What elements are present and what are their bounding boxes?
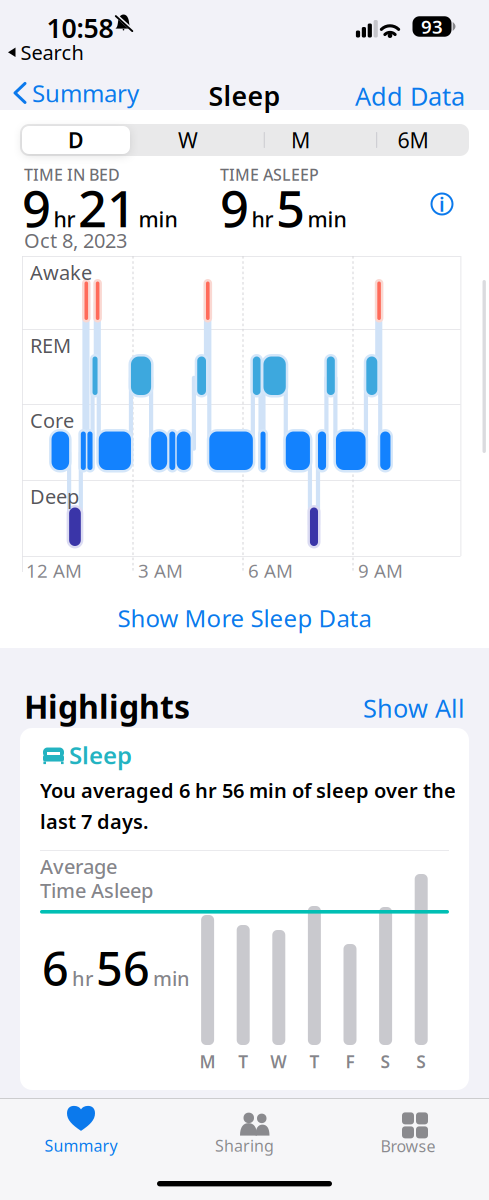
staticText: 9 AM — [358, 558, 403, 583]
button[interactable]: W — [132, 124, 244, 156]
staticText: S — [381, 1050, 391, 1073]
staticText: 21 — [78, 174, 136, 241]
staticText: TIME IN BED — [24, 164, 120, 185]
staticText: W — [178, 126, 198, 154]
staticText: Sleep — [69, 739, 132, 771]
staticText: Browse — [380, 1135, 435, 1157]
staticText: min — [138, 205, 177, 233]
staticText: last 7 days. — [40, 808, 149, 835]
staticText: Oct 8, 2023 — [24, 227, 127, 254]
staticText: hr — [251, 205, 273, 233]
staticText: 3 AM — [138, 558, 183, 583]
staticText: TIME ASLEEP — [220, 164, 319, 185]
button[interactable]: D — [20, 124, 132, 156]
staticText: M — [200, 1050, 216, 1073]
staticText: Core — [30, 407, 74, 434]
button[interactable]: Show All — [345, 691, 465, 725]
staticText: 93 — [421, 14, 443, 39]
button[interactable]: About Sleep — [430, 192, 454, 216]
staticText: T — [238, 1050, 248, 1073]
staticText: hr — [72, 965, 93, 992]
button[interactable]: 6M — [357, 124, 469, 156]
button[interactable]: M — [244, 124, 356, 156]
staticText: 5 — [276, 174, 305, 241]
staticText: M — [291, 126, 310, 154]
staticText: Awake — [30, 259, 92, 286]
staticText: Show All — [363, 691, 465, 725]
staticText: REM — [30, 332, 71, 359]
button[interactable]: Sharing — [179, 1103, 309, 1159]
staticText: Highlights — [24, 685, 190, 727]
staticText: min — [153, 965, 190, 992]
staticText: 12 AM — [26, 558, 82, 583]
staticText: 56 — [96, 937, 150, 999]
staticText: 6 — [42, 937, 69, 999]
staticText: 10:58 — [46, 10, 113, 45]
staticText: 6M — [397, 126, 428, 154]
button[interactable]: Summary — [16, 1103, 146, 1159]
button[interactable]: Sleep — [20, 728, 469, 1090]
staticText: Search — [20, 39, 83, 66]
staticText: i — [439, 191, 445, 217]
staticText: 9 — [220, 174, 249, 241]
staticText: D — [68, 126, 84, 154]
staticText: 6 AM — [248, 558, 293, 583]
staticText: W — [270, 1050, 287, 1073]
staticText: Summary — [32, 77, 139, 109]
staticText: hr — [53, 205, 75, 233]
button[interactable]: Browse — [343, 1103, 473, 1159]
staticText: T — [309, 1050, 319, 1073]
staticText: F — [345, 1050, 354, 1073]
staticText: You averaged 6 hr 56 min of sleep over t… — [40, 777, 456, 804]
button[interactable]: Add Data — [345, 79, 465, 113]
staticText: Sharing — [215, 1135, 274, 1156]
staticText: Average — [40, 853, 117, 880]
staticText: min — [307, 205, 346, 233]
button[interactable]: Show More Sleep Data — [0, 603, 489, 633]
staticText: Add Data — [355, 79, 465, 113]
staticText: Deep — [30, 483, 79, 510]
staticText: Time Asleep — [40, 877, 153, 904]
staticText: S — [416, 1050, 426, 1073]
staticText: Show More Sleep Data — [117, 602, 371, 634]
button[interactable]: Summary — [15, 77, 139, 109]
staticText: Summary — [44, 1135, 117, 1156]
staticText: Sleep — [208, 78, 280, 113]
staticText: 9 — [22, 174, 51, 241]
